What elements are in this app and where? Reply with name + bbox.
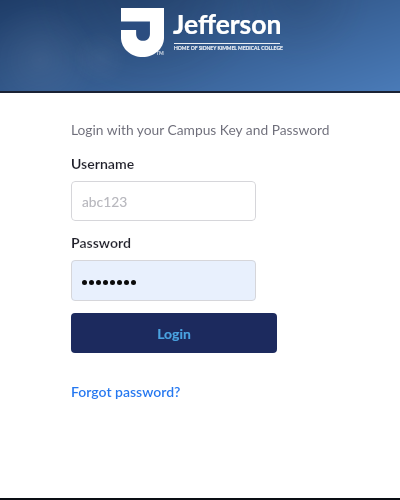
staticText: Jefferson — [173, 8, 282, 40]
staticText: TM — [156, 50, 164, 56]
staticText: Forgot password? — [71, 383, 181, 400]
staticText: Password — [71, 234, 131, 251]
staticText: Login — [157, 325, 191, 342]
button[interactable]: Login — [71, 313, 277, 353]
button[interactable]: Forgot password? — [71, 383, 181, 400]
button[interactable]: abc123 — [71, 181, 256, 221]
staticText: abc123 — [82, 193, 128, 210]
staticText: HOME OF SIDNEY KIMMEL MEDICAL COLLEGE — [174, 45, 283, 51]
button[interactable] — [71, 260, 256, 301]
staticText: Username — [71, 155, 135, 172]
staticText: Login with your Campus Key and Password — [71, 121, 330, 138]
